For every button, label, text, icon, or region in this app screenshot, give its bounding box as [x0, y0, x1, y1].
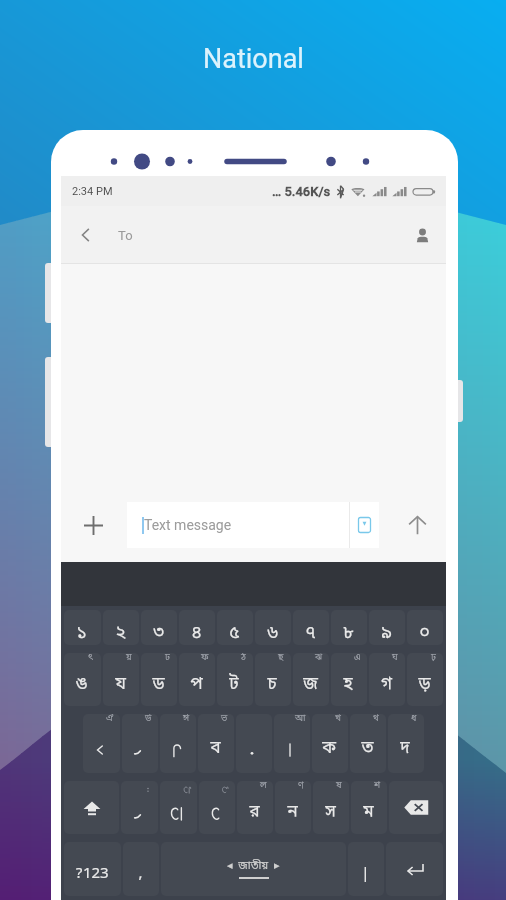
staticText: ম: [363, 801, 374, 824]
button[interactable]: ৮: [331, 610, 367, 645]
button[interactable]: ঢ: [141, 653, 177, 706]
button[interactable]: ,: [123, 842, 159, 896]
button[interactable]: ৯: [369, 610, 405, 645]
staticText: ল: [260, 781, 267, 792]
button[interactable]: ছ: [255, 653, 291, 706]
button[interactable]: ৩: [141, 610, 177, 645]
staticText: ঈ: [183, 714, 190, 725]
staticText: ৎ: [88, 653, 93, 664]
button[interactable]: ল: [237, 781, 273, 834]
other: Enter: [405, 859, 425, 879]
staticText: ?123: [75, 864, 109, 884]
staticText: ৩: [153, 621, 164, 645]
staticText: National: [203, 43, 304, 75]
staticText: ত: [361, 737, 374, 760]
staticText: ড়: [418, 673, 431, 696]
button[interactable]: ৭: [293, 610, 329, 645]
button[interactable]: ভ: [198, 714, 234, 773]
button[interactable]: আ: [274, 714, 310, 773]
staticText: ছ: [278, 653, 284, 664]
staticText: এ: [354, 653, 361, 664]
staticText: ঠ: [241, 653, 246, 664]
staticText: চ: [267, 673, 277, 696]
button[interactable]: [199, 781, 235, 834]
button[interactable]: ঈ: [160, 714, 196, 773]
staticText: ধ: [411, 714, 417, 725]
staticText: থ: [373, 714, 379, 725]
staticText: প: [190, 673, 203, 696]
button[interactable]: ঠ: [217, 653, 253, 706]
staticText: জ: [303, 673, 318, 696]
staticText: য়: [126, 653, 132, 664]
button[interactable]: শ: [351, 781, 387, 834]
button[interactable]: Back: [71, 220, 101, 250]
button[interactable]: ?123: [64, 842, 121, 896]
button[interactable]: ৬: [255, 610, 291, 645]
staticText: ড: [152, 673, 165, 696]
staticText: ৪: [191, 621, 202, 645]
staticText: ৯: [381, 621, 392, 645]
staticText: |: [361, 864, 370, 884]
staticText: ফ: [201, 653, 209, 664]
button[interactable]: খ: [312, 714, 348, 773]
button[interactable]: Space: [161, 842, 346, 896]
button[interactable]: ৎ: [64, 653, 101, 706]
staticText: ১: [76, 621, 87, 645]
staticText: উ: [145, 714, 152, 725]
button[interactable]: উ: [122, 714, 158, 773]
staticText: ন: [287, 801, 298, 824]
button[interactable]: [121, 781, 158, 834]
button[interactable]: Send: [399, 507, 435, 543]
button[interactable]: Insert file: [351, 512, 377, 538]
button[interactable]: ০: [407, 610, 443, 645]
staticText: ◂ জাতীয় ▸: [227, 859, 280, 874]
staticText: ভ: [221, 714, 228, 725]
button[interactable]: ফ: [179, 653, 215, 706]
staticText: ঐ: [106, 714, 114, 725]
other: Shift: [82, 798, 102, 818]
button[interactable]: Add attachment: [75, 507, 111, 543]
button[interactable]: ঘ: [369, 653, 405, 706]
staticText: ক: [322, 737, 336, 760]
button[interactable]: ২: [103, 610, 139, 645]
staticText: ণ: [298, 781, 304, 792]
button[interactable]: Contacts: [407, 220, 437, 250]
staticText: দ: [400, 737, 410, 760]
button[interactable]: Backspace: [389, 781, 443, 834]
button[interactable]: Enter: [386, 842, 443, 896]
staticText: গ: [381, 673, 392, 696]
staticText: ট: [229, 673, 239, 696]
button[interactable]: ধ: [388, 714, 424, 773]
staticText: ঙ: [75, 673, 88, 696]
staticText: ০: [419, 621, 430, 645]
button[interactable]: ঝ: [293, 653, 329, 706]
button[interactable]: |: [348, 842, 384, 896]
staticText: আ: [295, 714, 306, 725]
button[interactable]: থ: [350, 714, 386, 773]
staticText: ঘ: [392, 653, 398, 664]
button[interactable]: ৫: [217, 610, 253, 645]
staticText: To: [118, 228, 133, 243]
button[interactable]: [160, 781, 197, 834]
staticText: ব: [210, 737, 221, 760]
staticText: শ: [374, 781, 381, 792]
button[interactable]: ঐ: [83, 714, 120, 773]
staticText: 2:34 PM: [72, 185, 113, 198]
staticText: র: [249, 801, 260, 824]
staticText: ৬: [267, 621, 278, 645]
button[interactable]: [236, 714, 272, 773]
button[interactable]: Text message: [127, 502, 379, 548]
staticText: হ: [343, 673, 353, 696]
staticText: ,: [138, 864, 143, 884]
button[interactable]: ৪: [179, 610, 215, 645]
button[interactable]: ষ: [313, 781, 349, 834]
button[interactable]: Shift: [64, 781, 119, 834]
staticText: ঢ়: [431, 653, 436, 664]
button[interactable]: ঢ়: [407, 653, 443, 706]
button[interactable]: ১: [64, 610, 101, 645]
button[interactable]: য়: [103, 653, 139, 706]
staticText: স: [325, 801, 336, 824]
button[interactable]: ণ: [275, 781, 311, 834]
button[interactable]: এ: [331, 653, 367, 706]
staticText: ষ: [336, 781, 342, 792]
